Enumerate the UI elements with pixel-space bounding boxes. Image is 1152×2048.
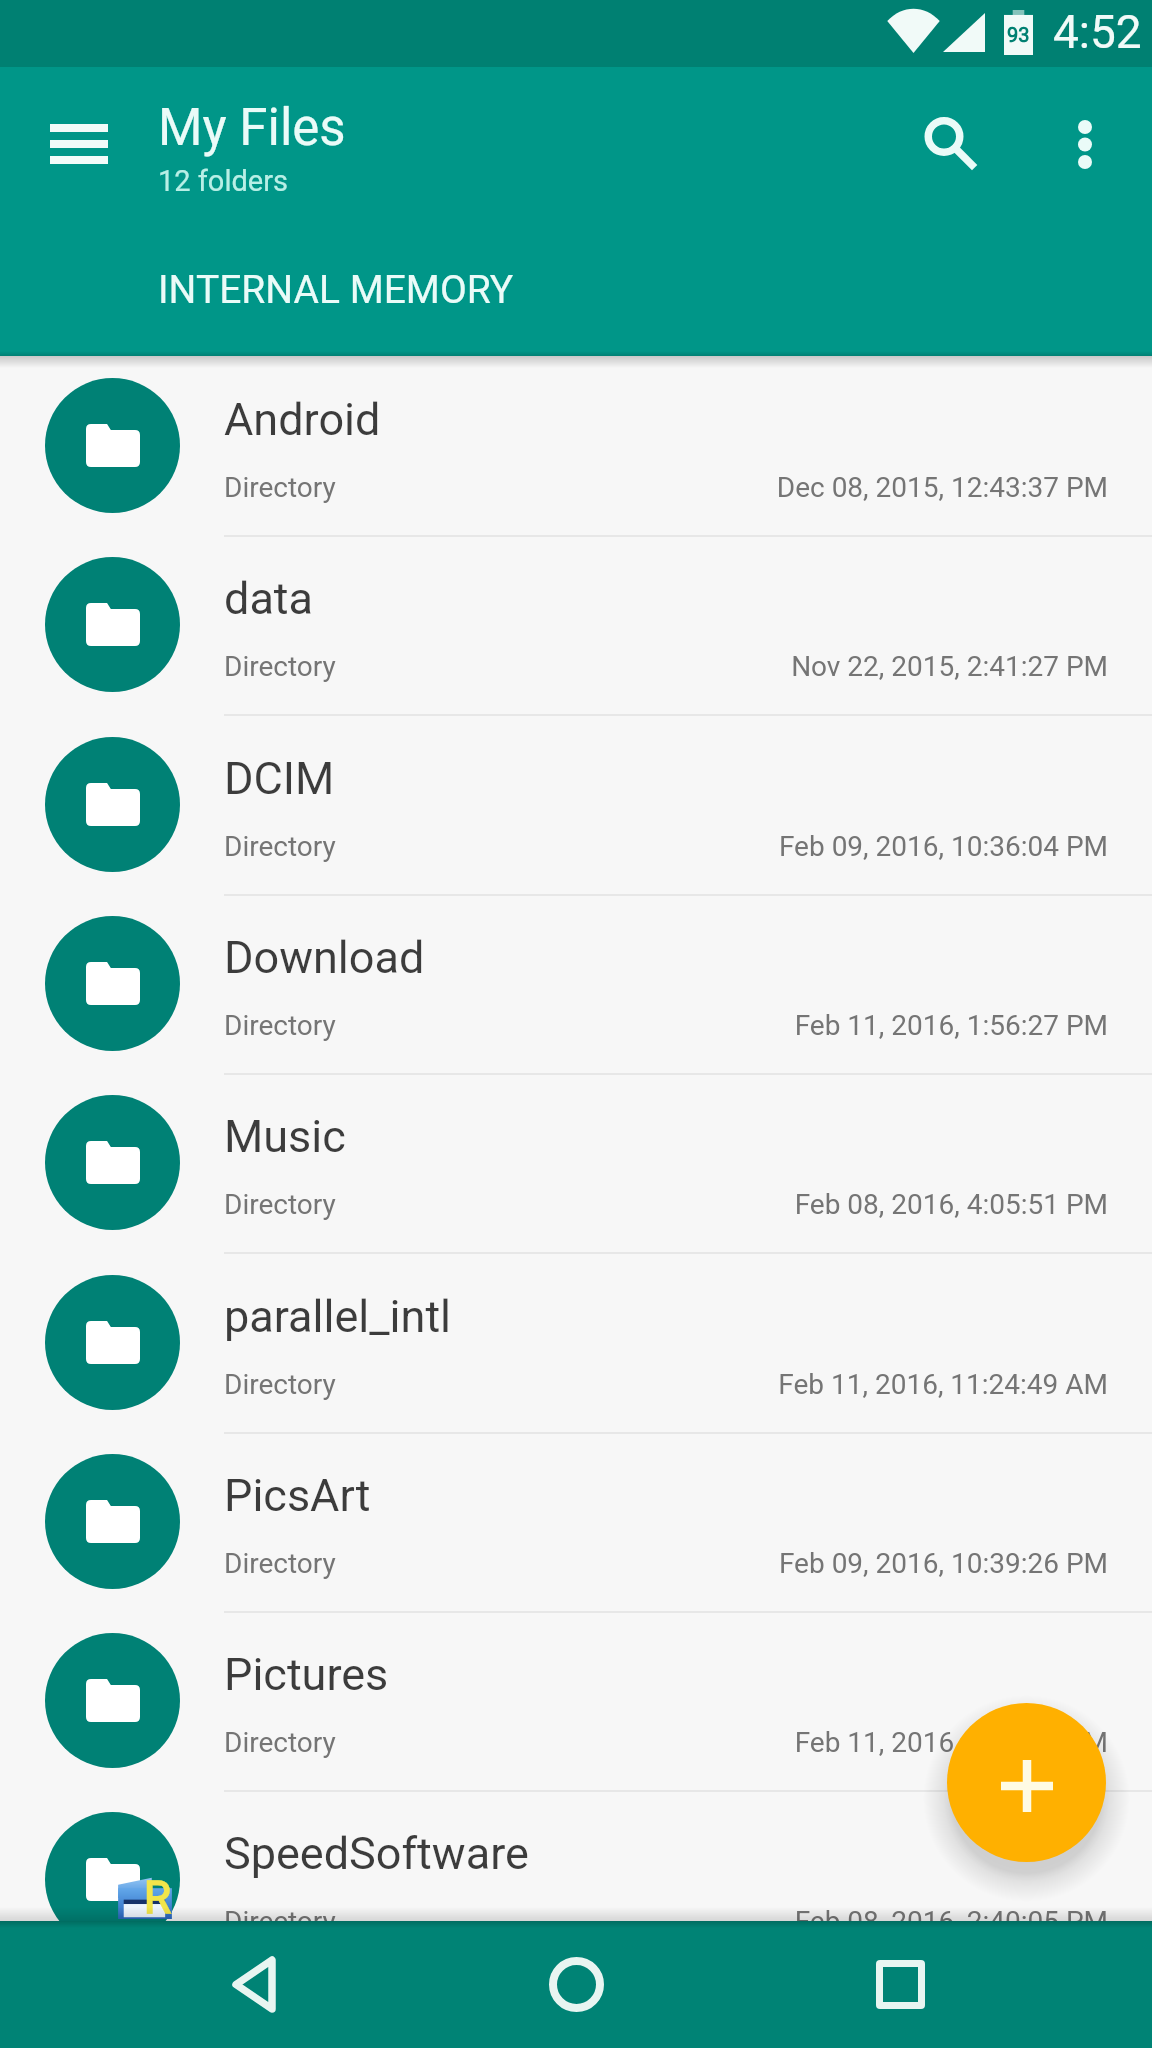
staticText: Directory (224, 1009, 336, 1042)
staticText: PicsArt (224, 1469, 371, 1522)
staticText: Feb 09, 2016, 10:36:04 PM (778, 830, 1108, 863)
staticText: SpeedSoftware (224, 1827, 529, 1880)
staticText: Directory (224, 1547, 336, 1580)
staticText: 4:52 (1053, 5, 1142, 59)
staticText: Music (224, 1110, 346, 1163)
staticText: My Files (158, 98, 346, 158)
staticText: Dec 08, 2015, 12:43:37 PM (776, 471, 1108, 504)
button[interactable]: Add (947, 1703, 1106, 1862)
staticText: Pictures (224, 1648, 389, 1701)
staticText: Directory (224, 650, 336, 683)
staticText: data (224, 572, 314, 625)
staticText: 12 folders (158, 164, 288, 198)
staticText: Directory (224, 830, 336, 863)
staticText: INTERNAL MEMORY (158, 267, 514, 313)
button[interactable]: Back (193, 1924, 313, 2044)
staticText: R (144, 1872, 172, 1924)
staticText: Feb 09, 2016, 10:39:26 PM (778, 1547, 1108, 1580)
staticText: parallel_intl (224, 1290, 452, 1343)
staticText: Feb 11, 2016, 1:56:27 PM (794, 1009, 1108, 1042)
button[interactable]: More options (1032, 91, 1138, 197)
staticText: Directory (224, 1368, 336, 1401)
staticText: 93 (1007, 23, 1030, 46)
staticText: Android (224, 393, 381, 446)
button[interactable]: data (0, 535, 1152, 714)
staticText: Feb 11, 2016, 11:24:49 AM (778, 1368, 1108, 1401)
button[interactable]: Recent apps (840, 1924, 960, 2044)
staticText: Download (224, 931, 425, 984)
button[interactable]: Music (0, 1073, 1152, 1252)
staticText: Feb 08, 2016, 4:05:51 PM (794, 1188, 1108, 1221)
button[interactable]: Android (0, 356, 1152, 535)
button[interactable]: Search (891, 84, 997, 190)
button[interactable]: parallel_intl (0, 1253, 1152, 1432)
staticText: Feb 08, 2016, 2:40:05 PM (794, 1905, 1108, 1938)
staticText: Directory (224, 1726, 336, 1759)
staticText: Directory (224, 1905, 336, 1938)
button[interactable]: R (0, 1790, 1152, 1969)
staticText: Feb 11, 2016, 2:15:09 PM (794, 1726, 1108, 1759)
staticText: Nov 22, 2015, 2:41:27 PM (791, 650, 1108, 683)
staticText: Directory (224, 1188, 336, 1221)
staticText: DCIM (224, 752, 335, 805)
button[interactable]: Open navigation drawer (26, 91, 132, 197)
button[interactable]: Pictures (0, 1611, 1152, 1790)
staticText: Directory (224, 471, 336, 504)
button[interactable]: Home (516, 1924, 636, 2044)
button[interactable]: PicsArt (0, 1432, 1152, 1611)
button[interactable]: DCIM (0, 715, 1152, 894)
button[interactable]: Download (0, 894, 1152, 1073)
